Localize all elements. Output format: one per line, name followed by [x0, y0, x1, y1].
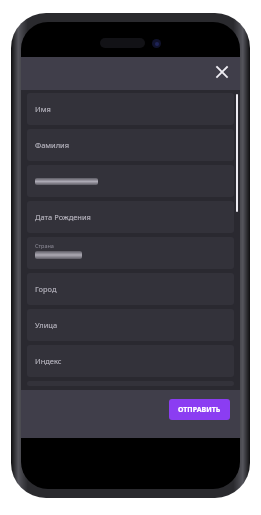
button[interactable] [27, 165, 234, 197]
staticText: Дата Рождения [35, 212, 91, 222]
staticText: Страна [35, 242, 54, 249]
staticText: Фамилия [35, 140, 70, 150]
staticText: Улица [35, 320, 58, 330]
button[interactable]: Страна [27, 237, 234, 269]
button[interactable]: Имя [27, 93, 234, 125]
staticText: Индекс [35, 356, 62, 366]
button[interactable]: Улица [27, 309, 234, 341]
staticText: Город [35, 284, 57, 294]
staticText: Имя [35, 104, 51, 114]
staticText: ОТПРАВИТЬ [178, 405, 221, 415]
button[interactable]: Город [27, 273, 234, 305]
button[interactable]: ОТПРАВИТЬ [169, 399, 230, 420]
button[interactable]: Дата Рождения [27, 201, 234, 233]
button[interactable]: Фамилия [27, 129, 234, 161]
button[interactable]: Close [209, 59, 235, 85]
button[interactable]: Индекс [27, 345, 234, 377]
